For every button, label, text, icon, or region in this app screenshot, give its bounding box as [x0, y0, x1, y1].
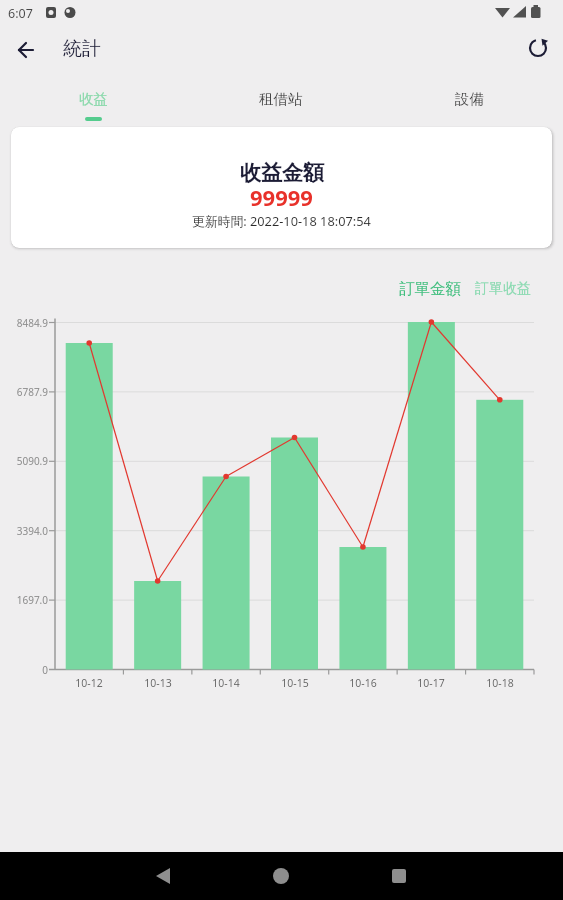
staticText: 更新時間: 2022-10-18 18:07:54 [192, 212, 371, 229]
staticText: 6:07 [8, 5, 33, 22]
staticText: 5090.9 [0, 454, 48, 468]
button[interactable]: 收益 [0, 74, 187, 122]
staticText: 3394.0 [0, 524, 48, 538]
staticText: 10-14 [201, 676, 251, 690]
button[interactable]: 設備 [375, 74, 563, 122]
staticText: 99999 [250, 182, 313, 212]
staticText: 0 [0, 663, 48, 677]
staticText: 10-12 [64, 676, 114, 690]
staticText: 10-16 [338, 676, 388, 690]
button[interactable] [375, 852, 423, 900]
button[interactable]: 訂單收益 [475, 280, 531, 298]
staticText: 租借站 [259, 90, 303, 108]
staticText: 6787.9 [0, 385, 48, 399]
staticText: 統計 [63, 37, 101, 61]
button[interactable] [10, 34, 42, 66]
staticText: 1697.0 [0, 593, 48, 607]
button[interactable] [257, 852, 305, 900]
button[interactable]: 訂單金額 [399, 279, 461, 299]
staticText: 10-13 [133, 676, 183, 690]
staticText: 10-17 [406, 676, 456, 690]
staticText: 收益金額 [240, 160, 324, 186]
staticText: 10-15 [270, 676, 320, 690]
staticText: 訂單金額 [399, 279, 461, 299]
staticText: 訂單收益 [475, 280, 531, 298]
staticText: 收益 [79, 90, 108, 108]
staticText: 設備 [455, 90, 484, 108]
button[interactable]: 收益金額 [11, 127, 552, 248]
staticText: 10-18 [475, 676, 525, 690]
button[interactable]: 租借站 [187, 74, 375, 122]
staticText: 8484.9 [0, 316, 48, 330]
button[interactable] [522, 32, 554, 64]
button[interactable] [139, 852, 187, 900]
